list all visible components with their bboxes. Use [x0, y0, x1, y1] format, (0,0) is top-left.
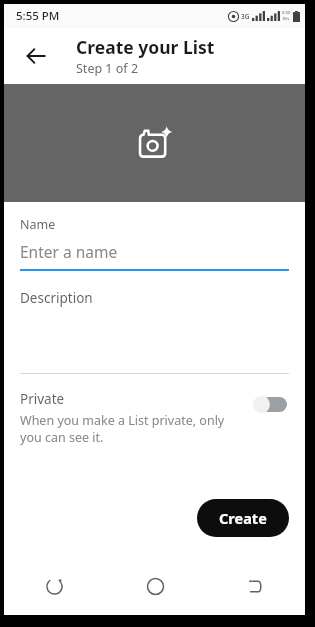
button[interactable]: Add cover photo — [4, 84, 305, 202]
staticText: 3G — [241, 12, 250, 21]
other: Private toggle — [253, 396, 289, 413]
button[interactable]: Private — [20, 390, 289, 445]
staticText: Step 1 of 2 — [76, 60, 139, 77]
staticText: Create your List — [76, 35, 215, 59]
staticText: 0.00 — [282, 10, 291, 16]
button[interactable]: Back — [4, 557, 105, 615]
staticText: Private — [20, 390, 65, 408]
staticText: Create — [219, 508, 267, 528]
button[interactable]: Description — [20, 289, 289, 374]
staticText: When you make a List private, only you c… — [20, 412, 243, 445]
button[interactable]: Recent apps — [205, 557, 305, 615]
button[interactable]: Create — [197, 499, 289, 537]
staticText: B/s — [283, 16, 290, 22]
button[interactable]: Home — [105, 557, 205, 615]
staticText: Name — [20, 216, 56, 233]
staticText: Enter a name — [20, 241, 118, 262]
staticText: Description — [20, 289, 93, 307]
staticText: 5:55 PM — [16, 8, 60, 24]
button[interactable]: Name — [20, 216, 289, 271]
button[interactable]: Back — [14, 34, 58, 78]
